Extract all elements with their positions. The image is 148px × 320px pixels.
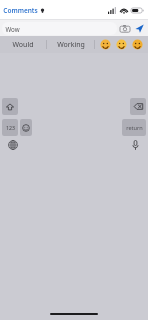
button[interactable] bbox=[100, 39, 111, 50]
staticText: Would bbox=[12, 40, 34, 50]
staticText: Wow bbox=[5, 25, 20, 33]
button[interactable]: Send bbox=[132, 21, 147, 36]
button[interactable]: Emoji bbox=[20, 119, 32, 136]
button[interactable] bbox=[116, 39, 127, 50]
button[interactable]: Wow bbox=[2, 22, 117, 35]
button[interactable]: Camera bbox=[117, 21, 132, 36]
button[interactable]: Shift bbox=[2, 98, 18, 115]
button[interactable]: 123 bbox=[2, 119, 18, 136]
button[interactable]: Dictate bbox=[128, 138, 142, 152]
button[interactable]: Would bbox=[0, 36, 46, 53]
staticText: Comments bbox=[3, 6, 38, 15]
staticText: Working bbox=[57, 40, 85, 50]
button[interactable]: Working bbox=[47, 36, 94, 53]
staticText: 123 bbox=[6, 124, 15, 131]
button[interactable] bbox=[132, 39, 143, 50]
button[interactable]: Backspace bbox=[130, 98, 146, 115]
button[interactable]: Change keyboard language bbox=[6, 138, 20, 152]
button[interactable]: return bbox=[122, 119, 146, 136]
staticText: return bbox=[126, 124, 143, 132]
button[interactable]: Comments bbox=[3, 6, 45, 15]
